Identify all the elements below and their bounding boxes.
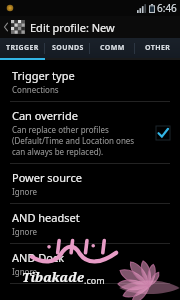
- staticText: Ignore: [12, 226, 38, 237]
- button[interactable]: COMM: [90, 38, 135, 58]
- staticText: AND Dock: [12, 250, 65, 265]
- staticText: Can replace other profiles: [12, 124, 109, 135]
- button[interactable]: Power source: [0, 164, 180, 203]
- button[interactable]: Can override: [0, 102, 180, 163]
- staticText: AND headset: [12, 210, 80, 225]
- button[interactable]: AND headset: [0, 204, 180, 243]
- button[interactable]: AND Wifi switch: [0, 284, 180, 300]
- staticText: (Default/Time and Location ones: [12, 135, 135, 146]
- staticText: can always be replaced).: [12, 146, 104, 157]
- button[interactable]: Trigger type: [0, 62, 180, 101]
- button[interactable]: TRIGGER: [0, 38, 45, 58]
- staticText: SOUNDS: [52, 43, 84, 53]
- button[interactable]: AND Dock: [0, 244, 180, 283]
- staticText: Connections: [12, 84, 59, 95]
- staticText: COMM: [100, 43, 125, 53]
- button[interactable]: OTHER: [135, 38, 180, 58]
- button[interactable]: Navigate up, Edit profile: New: [0, 16, 180, 38]
- staticText: TRIGGER: [6, 43, 39, 53]
- staticText: OTHER: [145, 43, 171, 53]
- staticText: Ignore: [12, 186, 38, 197]
- staticText: Trigger type: [12, 68, 75, 83]
- staticText: 6:46: [157, 1, 177, 15]
- staticText: Edit profile: New: [30, 20, 115, 35]
- button[interactable]: Can override checkbox: [154, 124, 172, 142]
- staticText: Power source: [12, 170, 82, 185]
- staticText: Ignore: [12, 266, 38, 277]
- staticText: Can override: [12, 108, 78, 123]
- button[interactable]: SOUNDS: [45, 38, 90, 58]
- staticText: .com: [84, 274, 105, 286]
- staticText: Tibakade: [22, 268, 84, 286]
